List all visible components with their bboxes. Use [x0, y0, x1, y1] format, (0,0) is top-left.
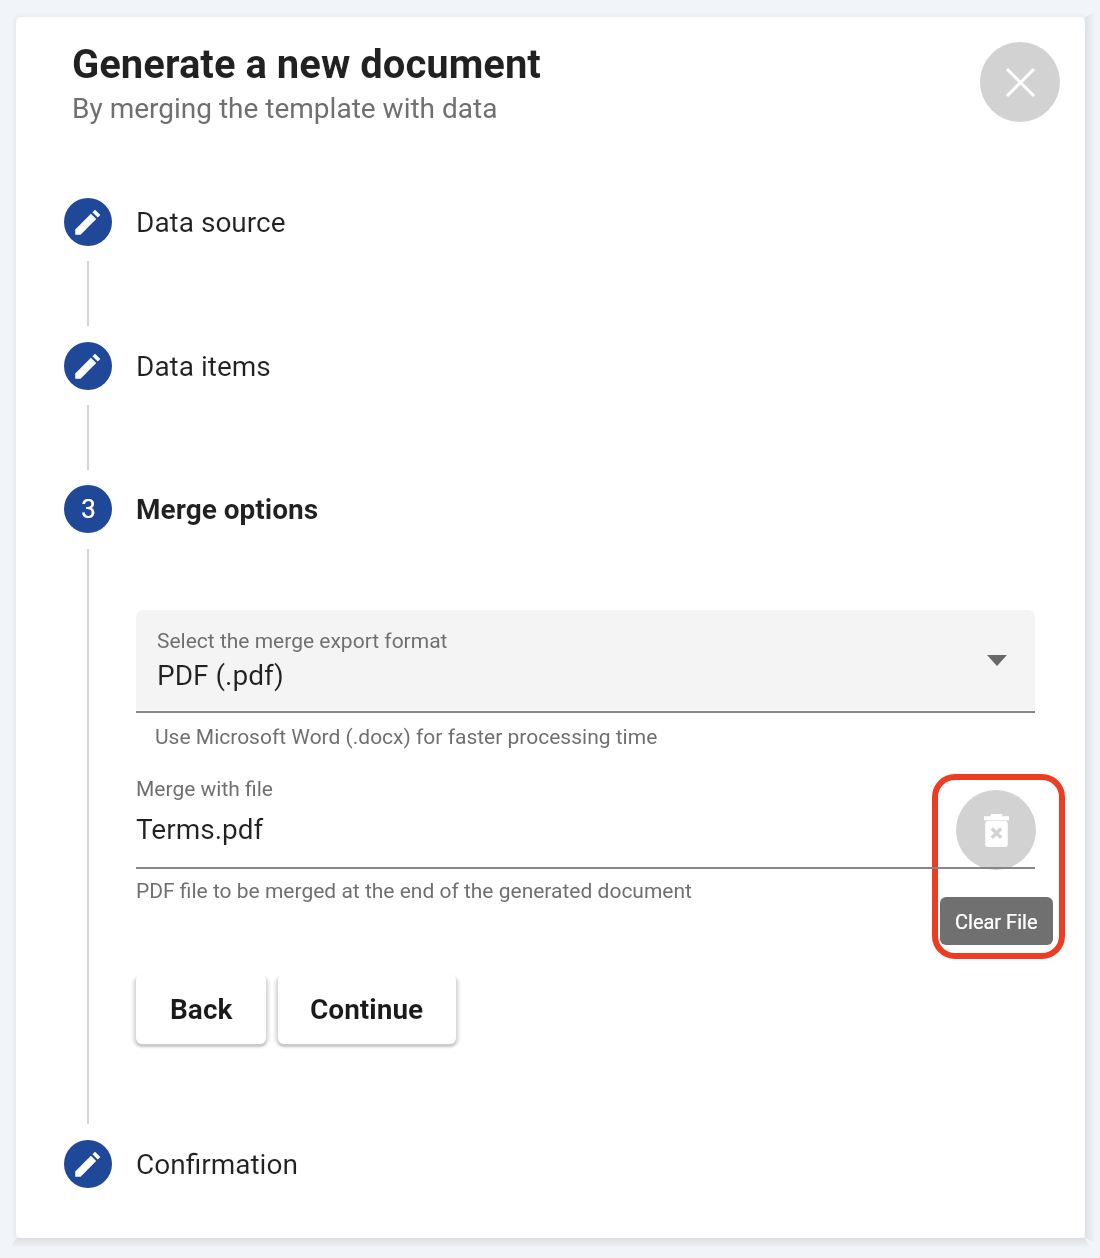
staticText: Use Microsoft Word (.docx) for faster pr… [155, 725, 658, 750]
staticText: Select the merge export format [157, 629, 448, 654]
button[interactable]: Close [980, 42, 1060, 122]
button[interactable]: Confirmation [64, 1136, 298, 1192]
button[interactable]: Select the merge export format [136, 610, 1035, 710]
staticText: Back [170, 993, 233, 1026]
staticText: By merging the template with data [72, 92, 498, 125]
staticText: Terms.pdf [136, 813, 264, 846]
button[interactable]: Clear File [940, 897, 1053, 945]
button[interactable]: Continue [278, 974, 456, 1044]
staticText: Continue [310, 993, 424, 1026]
button[interactable]: Back [136, 974, 266, 1044]
button[interactable]: 3 [64, 481, 319, 537]
staticText: Confirmation [136, 1148, 298, 1181]
staticText: 3 [81, 494, 96, 524]
staticText: Clear File [955, 910, 1038, 933]
staticText: PDF file to be merged at the end of the … [136, 879, 692, 904]
staticText: Merge options [136, 493, 319, 526]
staticText: Generate a new document [72, 41, 541, 88]
button[interactable]: Data items [64, 338, 271, 394]
staticText: Data source [136, 206, 286, 239]
button[interactable]: Clear File [956, 790, 1036, 870]
staticText: Merge with file [136, 777, 273, 802]
button[interactable]: Data source [64, 194, 286, 250]
staticText: PDF (.pdf) [157, 659, 284, 692]
staticText: Data items [136, 350, 271, 383]
